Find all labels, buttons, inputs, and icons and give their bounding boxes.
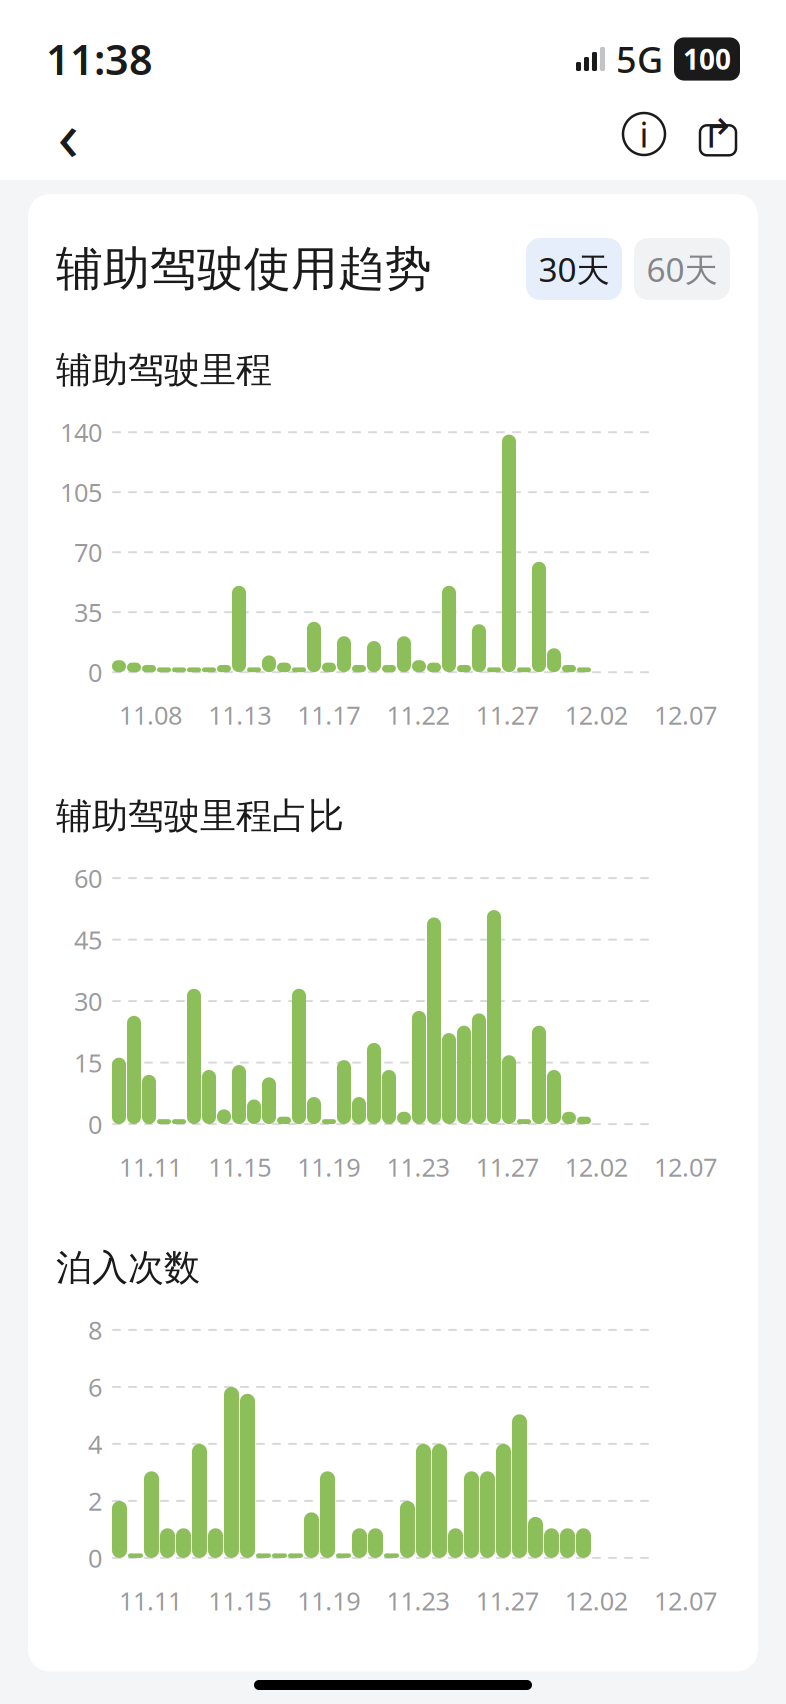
staticText: 60 <box>74 861 102 895</box>
staticText: 60天 <box>646 247 717 291</box>
staticText: 2 <box>88 1484 102 1518</box>
staticText: 辅助驾驶里程占比 <box>56 794 344 838</box>
staticText: 11.23 <box>386 1150 449 1184</box>
staticText: 11.19 <box>297 1584 360 1617</box>
staticText: 4 <box>88 1427 102 1461</box>
staticText: ↱ <box>701 111 735 157</box>
staticText: 11.22 <box>386 698 449 732</box>
staticText: 12.07 <box>654 1584 717 1617</box>
staticText: 12.02 <box>565 698 628 732</box>
button[interactable]: 60天 <box>634 238 730 300</box>
staticText: 12.07 <box>654 698 717 732</box>
button[interactable]: 说明 <box>612 99 676 169</box>
staticText: 30天 <box>538 247 609 291</box>
staticText: 11.11 <box>119 1150 182 1184</box>
staticText: 11.23 <box>386 1584 449 1617</box>
staticText: 11.19 <box>297 1150 360 1184</box>
staticText: 12.07 <box>654 1150 717 1184</box>
staticText: 6 <box>88 1370 102 1404</box>
staticText: 45 <box>74 923 102 956</box>
button[interactable]: 分享 <box>686 99 750 169</box>
staticText: 11.27 <box>476 698 539 732</box>
button[interactable]: 30天 <box>526 238 622 300</box>
staticText: 11.27 <box>476 1584 539 1617</box>
staticText: 11.11 <box>119 1584 182 1617</box>
staticText: 辅助驾驶使用趋势 <box>56 240 432 298</box>
staticText: 0 <box>88 1107 102 1141</box>
staticText: 11:38 <box>46 32 153 86</box>
staticText: ‹ <box>57 88 78 180</box>
staticText: 12.02 <box>565 1150 628 1184</box>
staticText: 140 <box>60 415 102 449</box>
staticText: 70 <box>74 535 102 569</box>
staticText: 11.15 <box>208 1150 271 1184</box>
staticText: 泊入次数 <box>56 1246 200 1290</box>
staticText: 100 <box>683 40 731 78</box>
staticText: 11.27 <box>476 1150 539 1184</box>
staticText: 11.15 <box>208 1584 271 1617</box>
staticText: 15 <box>74 1046 102 1079</box>
button[interactable]: 返回 <box>36 99 100 169</box>
staticText: 12.02 <box>565 1584 628 1617</box>
staticText: 105 <box>60 475 102 509</box>
staticText: 8 <box>88 1313 102 1347</box>
staticText: 11.13 <box>208 698 271 732</box>
staticText: 0 <box>88 655 102 689</box>
staticText: 30 <box>74 984 102 1018</box>
staticText: 35 <box>74 595 102 629</box>
staticText: 辅助驾驶里程 <box>56 348 272 392</box>
staticText: 11.08 <box>119 698 182 732</box>
staticText: 0 <box>88 1541 102 1575</box>
staticText: 11.17 <box>297 698 360 732</box>
staticText: 5G <box>616 35 663 83</box>
staticText: i <box>639 111 648 157</box>
